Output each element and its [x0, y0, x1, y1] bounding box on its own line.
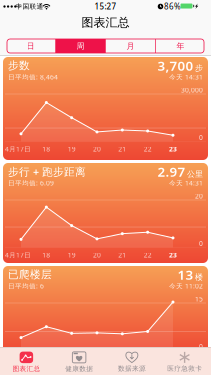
staticText: 步行 + 跑步距离 [8, 164, 86, 179]
staticText: 21 [118, 251, 126, 259]
staticText: 0 [199, 239, 203, 248]
staticText: 数据来源 [118, 364, 146, 373]
staticText: 2.97 [157, 163, 185, 180]
button[interactable]: 已爬楼层 [3, 266, 208, 355]
staticText: 今天 11:02 [169, 282, 203, 290]
staticText: 中国联通 [15, 2, 43, 11]
staticText: 今天 14:31 [169, 179, 203, 187]
staticText: 4月17日 [5, 251, 31, 259]
staticText: 日平均值: 6 [8, 282, 44, 290]
button[interactable]: 数据来源 [105, 349, 158, 375]
staticText: 18 [42, 145, 50, 153]
button[interactable]: 年 [156, 39, 205, 53]
staticText: 86% [164, 1, 181, 12]
staticText: 18 [42, 251, 50, 259]
staticText: 日平均值: 8,464 [8, 73, 58, 81]
staticText: 0 [199, 133, 203, 142]
staticText: 4月17日 [5, 145, 31, 153]
staticText: 22 [144, 251, 152, 259]
button[interactable]: 步数 [3, 57, 208, 160]
staticText: 日平均值: 6.09 [8, 179, 54, 187]
staticText: 健康数据 [65, 365, 93, 373]
staticText: 13 [177, 266, 193, 283]
button[interactable]: 周 [56, 39, 105, 53]
staticText: 周 [76, 41, 84, 51]
button[interactable]: 日 [6, 39, 55, 53]
staticText: 已爬楼层 [8, 268, 52, 281]
staticText: 3,700 [157, 57, 193, 74]
staticText: 20 [93, 145, 101, 153]
staticText: 医疗急救卡 [167, 364, 202, 373]
staticText: 0 [199, 342, 203, 351]
staticText: 19 [68, 251, 76, 259]
staticText: 15:27 [94, 1, 116, 12]
staticText: 图表汇总 [81, 15, 129, 30]
staticText: 步 [195, 63, 203, 73]
staticText: 19 [68, 145, 76, 153]
staticText: 步数 [8, 59, 30, 72]
staticText: 23 [169, 145, 177, 153]
button[interactable]: 健康数据 [53, 349, 106, 375]
staticText: 15 [195, 295, 203, 303]
staticText: 20 [93, 251, 101, 259]
staticText: 21 [118, 145, 126, 153]
staticText: 22 [144, 145, 152, 153]
button[interactable]: 医疗急救卡 [158, 349, 211, 375]
button[interactable]: 图表汇总 [0, 349, 53, 375]
staticText: 年 [176, 41, 184, 51]
staticText: 公里 [187, 169, 203, 179]
staticText: 月 [126, 41, 134, 51]
staticText: 20 [195, 192, 203, 200]
button[interactable]: 月 [106, 39, 155, 53]
staticText: 今天 14:31 [169, 73, 203, 81]
staticText: 30,000 [181, 86, 203, 94]
staticText: 日 [27, 41, 35, 51]
button[interactable]: 步行 + 跑步距离 [3, 163, 208, 263]
staticText: 图表汇总 [12, 365, 40, 373]
staticText: 23 [169, 251, 177, 259]
staticText: 楼 [195, 272, 203, 282]
